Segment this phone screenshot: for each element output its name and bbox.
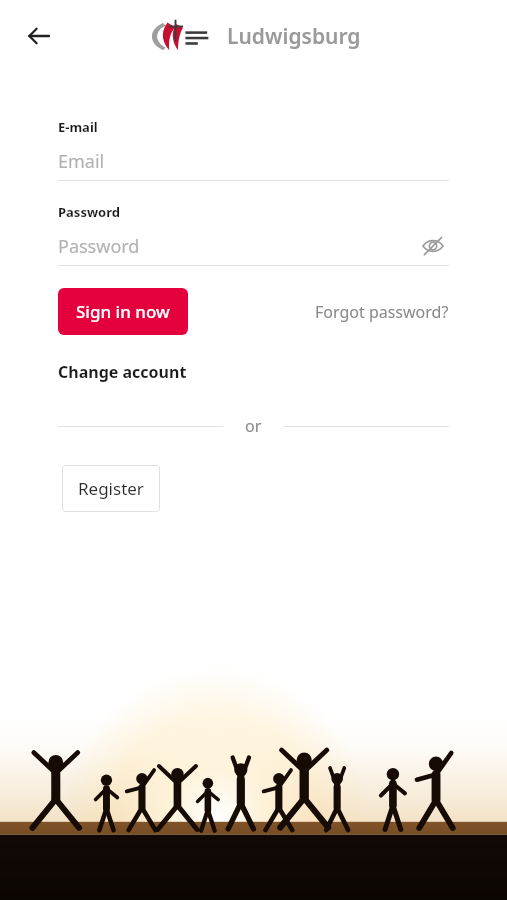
staticText: E-mail	[58, 118, 98, 136]
staticText: Email	[58, 149, 105, 174]
staticText: Password	[58, 203, 120, 221]
button[interactable]: Password	[58, 231, 449, 261]
staticText: Ludwigsburg	[227, 22, 361, 51]
staticText: or	[245, 415, 262, 437]
button[interactable]: Show password	[417, 231, 449, 261]
staticText: Sign in now	[76, 300, 170, 323]
button[interactable]: Email	[58, 146, 449, 176]
button[interactable]: Change account	[58, 357, 187, 387]
staticText: Change account	[58, 361, 187, 383]
button[interactable]: Sign in now	[58, 288, 188, 335]
staticText: Forgot password?	[315, 301, 449, 323]
button[interactable]: Back	[16, 13, 62, 59]
staticText: Password	[58, 234, 140, 259]
staticText: Register	[78, 477, 144, 500]
button[interactable]: Register	[62, 465, 160, 512]
button[interactable]: Forgot password?	[315, 295, 449, 329]
